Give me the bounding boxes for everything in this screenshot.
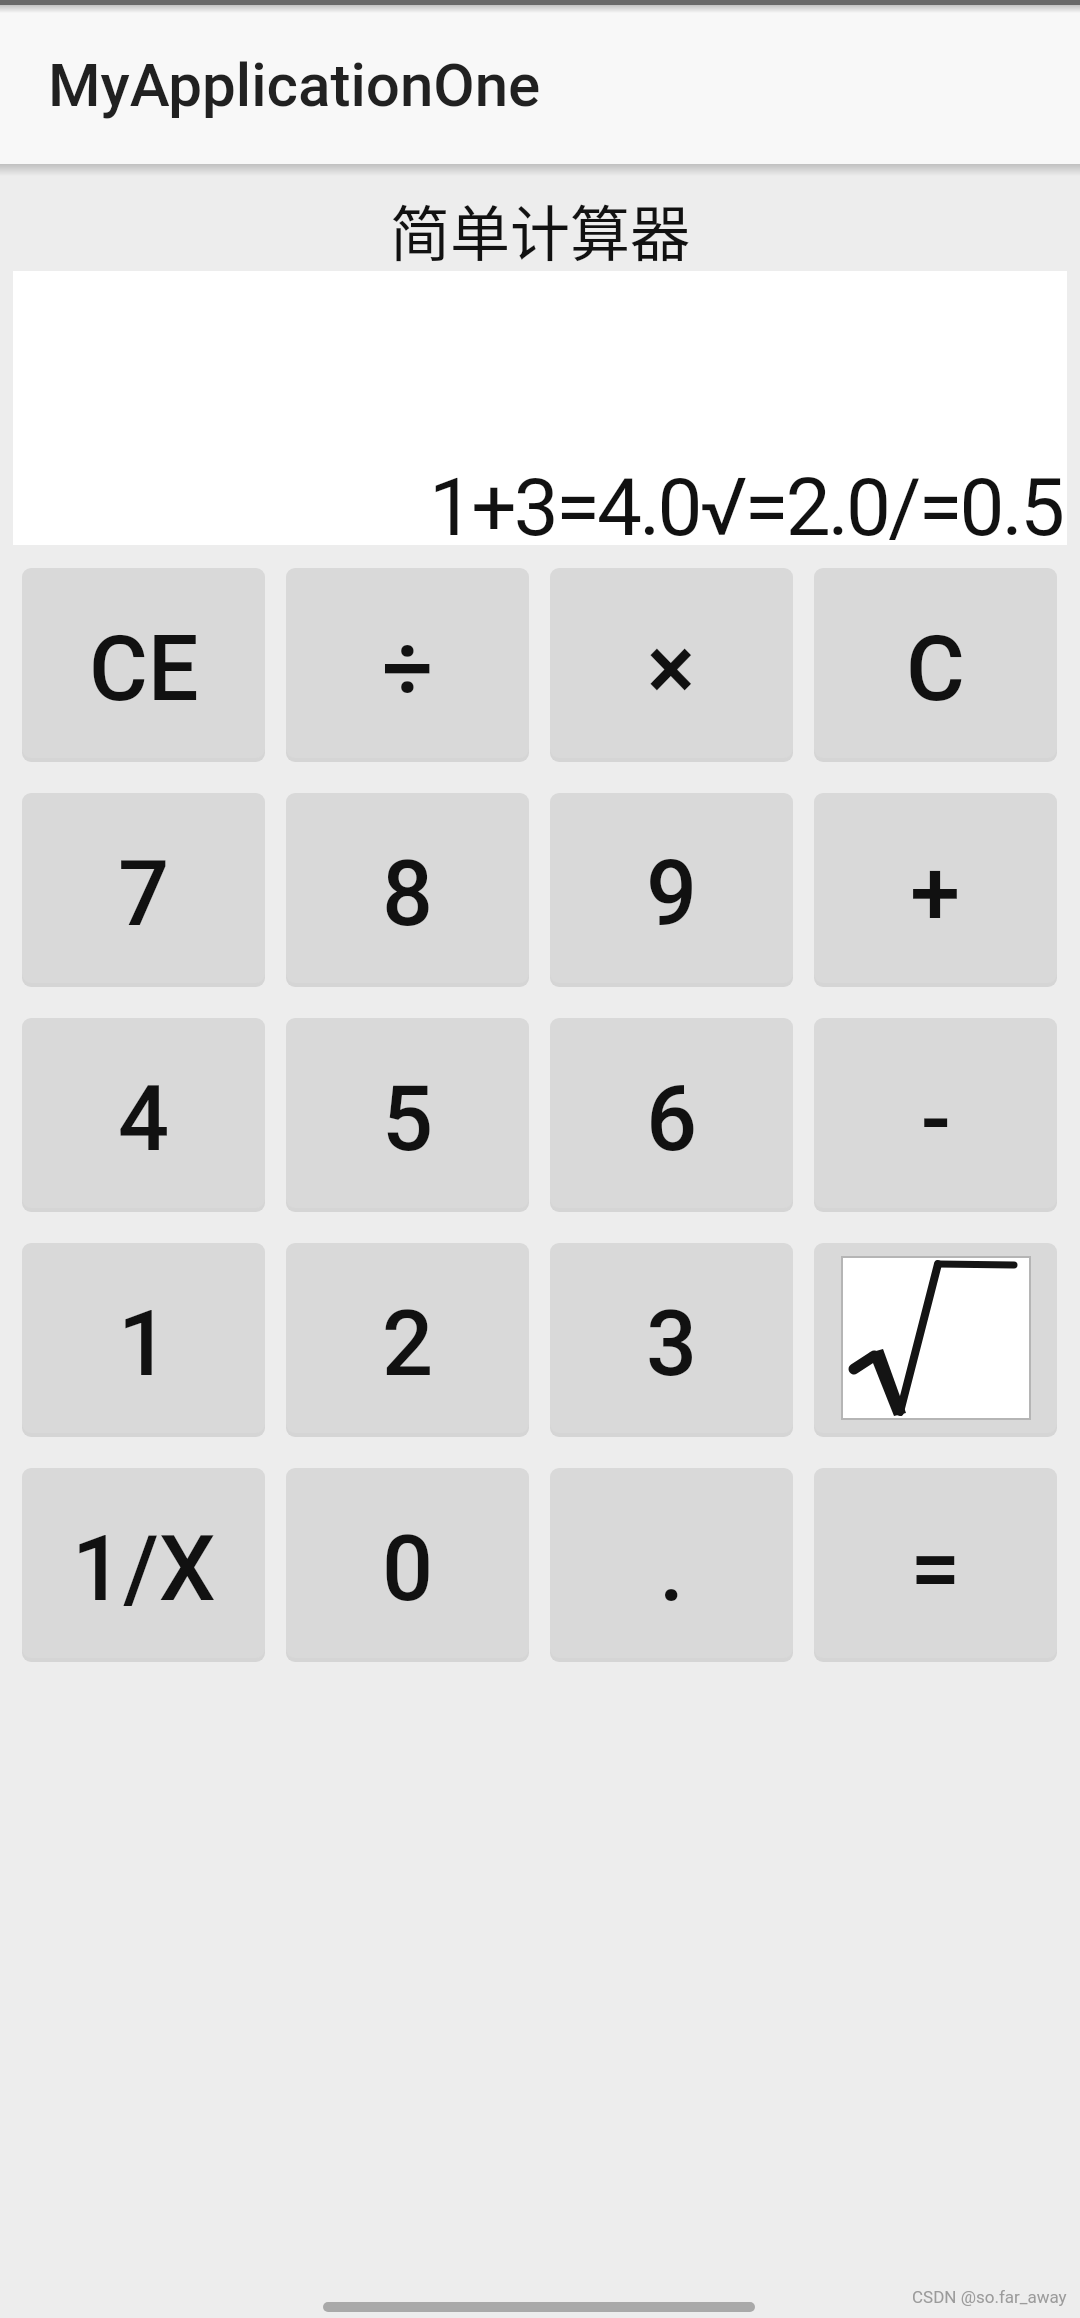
staticText: - [921, 1067, 951, 1172]
button[interactable]: 6 [550, 1018, 793, 1208]
staticText: MyApplicationOne [48, 50, 541, 120]
button[interactable]: 1 [22, 1243, 265, 1433]
button[interactable]: 0 [286, 1468, 529, 1658]
staticText: . [659, 1517, 685, 1622]
staticText: CE [89, 617, 199, 722]
button[interactable]: - [814, 1018, 1057, 1208]
button[interactable]: 4 [22, 1018, 265, 1208]
button[interactable]: ÷ [286, 568, 529, 758]
staticText: 8 [382, 842, 434, 947]
staticText: 4 [118, 1067, 170, 1172]
button[interactable]: 5 [286, 1018, 529, 1208]
button[interactable]: 3 [550, 1243, 793, 1433]
button[interactable] [814, 1243, 1057, 1433]
staticText: 1+3=4.0√=2.0/=0.5 [429, 461, 1063, 555]
button[interactable]: CE [22, 568, 265, 758]
button[interactable]: + [814, 793, 1057, 983]
staticText: 9 [646, 842, 698, 947]
staticText: + [910, 842, 961, 947]
staticText: C [906, 617, 965, 722]
button[interactable]: × [550, 568, 793, 758]
staticText: 0 [382, 1517, 434, 1622]
staticText: = [910, 1517, 961, 1622]
staticText: 5 [382, 1067, 434, 1172]
staticText: 6 [646, 1067, 698, 1172]
staticText: ÷ [382, 617, 434, 722]
staticText: 简单计算器 [390, 186, 690, 273]
staticText: CSDN @so.far_away [912, 2287, 1067, 2307]
button[interactable]: . [550, 1468, 793, 1658]
button[interactable]: C [814, 568, 1057, 758]
button[interactable]: = [814, 1468, 1057, 1658]
button[interactable]: 7 [22, 793, 265, 983]
staticText: 2 [382, 1292, 434, 1397]
staticText: 3 [646, 1292, 698, 1397]
button[interactable]: 1/X [22, 1468, 265, 1658]
staticText: × [647, 617, 696, 722]
staticText: 1/X [72, 1517, 216, 1622]
button[interactable]: 2 [286, 1243, 529, 1433]
staticText: 1 [118, 1292, 170, 1397]
staticText: 7 [118, 842, 170, 947]
button[interactable]: 9 [550, 793, 793, 983]
button[interactable]: 8 [286, 793, 529, 983]
